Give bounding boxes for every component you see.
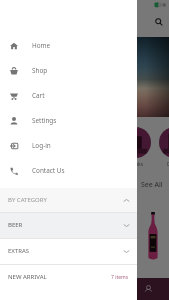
staticText: Popular Products: [6, 180, 72, 191]
staticText: Drinks: [128, 161, 144, 167]
button[interactable]: [4, 127, 35, 158]
button[interactable]: Shop: [0, 58, 137, 83]
button[interactable]: [159, 127, 169, 158]
staticText: Settings: [32, 116, 57, 125]
button[interactable]: [66, 204, 120, 268]
button[interactable]: BEER: [0, 212, 137, 238]
button[interactable]: Home: [0, 33, 137, 58]
staticText: Shop: [32, 66, 48, 75]
button[interactable]: See All: [141, 180, 163, 190]
button[interactable]: [120, 127, 151, 158]
button[interactable]: [43, 127, 74, 158]
button[interactable]: [6, 204, 60, 268]
staticText: 7 items: [111, 274, 129, 281]
button[interactable]: Log-in: [0, 133, 137, 158]
button[interactable]: EXTRAS: [0, 238, 137, 264]
staticText: BEER: [8, 221, 23, 229]
button[interactable]: Settings: [0, 108, 137, 133]
staticText: Drinks: [167, 161, 169, 167]
staticText: NEW ARRIVAL: [8, 273, 47, 281]
staticText: See All: [141, 180, 163, 190]
button[interactable]: [126, 204, 169, 268]
staticText: BY CATEGORY: [8, 196, 47, 204]
staticText: EXTRAS: [8, 247, 30, 255]
button[interactable]: NEW ARRIVAL: [0, 264, 137, 290]
button[interactable]: Contact Us: [0, 158, 137, 183]
staticText: Cart: [32, 91, 45, 100]
button[interactable]: Cart: [0, 83, 137, 108]
button[interactable]: Search: [152, 15, 165, 28]
button[interactable]: BY CATEGORY: [0, 188, 137, 212]
staticText: Contact Us: [32, 166, 65, 175]
button[interactable]: Account: [140, 281, 156, 297]
staticText: Home: [32, 41, 51, 50]
staticText: Log-in: [32, 141, 51, 150]
